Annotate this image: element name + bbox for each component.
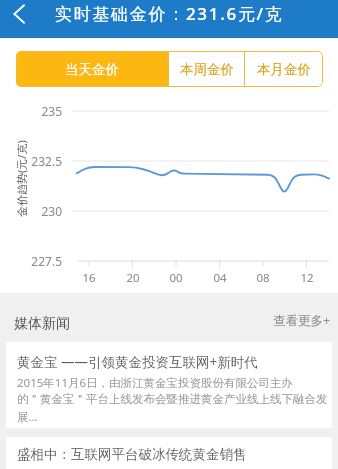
staticText: 08	[251, 270, 275, 286]
staticText: 黄金宝 ——引领黄金投资互联网+新时代	[17, 353, 258, 371]
staticText: 235	[12, 103, 62, 119]
button[interactable]: 本周金价	[169, 51, 244, 87]
staticText: 媒体新闻	[14, 315, 70, 333]
staticText: 04	[208, 270, 232, 286]
staticText: 227.5	[12, 253, 62, 269]
staticText: 的＂黄金宝＂平台上线发布会暨推进黄金产业线上线下融合发	[17, 392, 328, 406]
staticText: 12	[295, 270, 319, 286]
staticText: 查看更多+	[273, 312, 331, 329]
button[interactable]: Back	[0, 0, 38, 38]
button[interactable]: 查看更多+	[273, 312, 331, 329]
staticText: 230	[12, 203, 62, 219]
staticText: 00	[164, 270, 188, 286]
staticText: 当天金价	[65, 61, 119, 78]
staticText: 实时基础金价：231.6元/克	[55, 2, 284, 25]
staticText: 展…	[17, 409, 38, 425]
staticText: 20	[121, 270, 145, 286]
staticText: 16	[77, 270, 101, 286]
staticText: 2015年11月6日，由浙江黄金宝投资股份有限公司主办	[17, 375, 294, 391]
staticText: 金价趋势(元/克)	[14, 140, 29, 217]
staticText: 盛相中：互联网平台破冰传统黄金销售	[17, 446, 247, 463]
staticText: 232.5	[12, 153, 62, 169]
button[interactable]: 当天金价	[16, 51, 168, 87]
button[interactable]: 黄金宝 ——引领黄金投资互联网+新时代	[6, 342, 332, 428]
staticText: 本周金价	[180, 61, 234, 78]
button[interactable]: 本月金价	[245, 51, 322, 87]
button[interactable]: 盛相中：互联网平台破冰传统黄金销售	[6, 437, 332, 469]
staticText: 本月金价	[257, 61, 311, 78]
